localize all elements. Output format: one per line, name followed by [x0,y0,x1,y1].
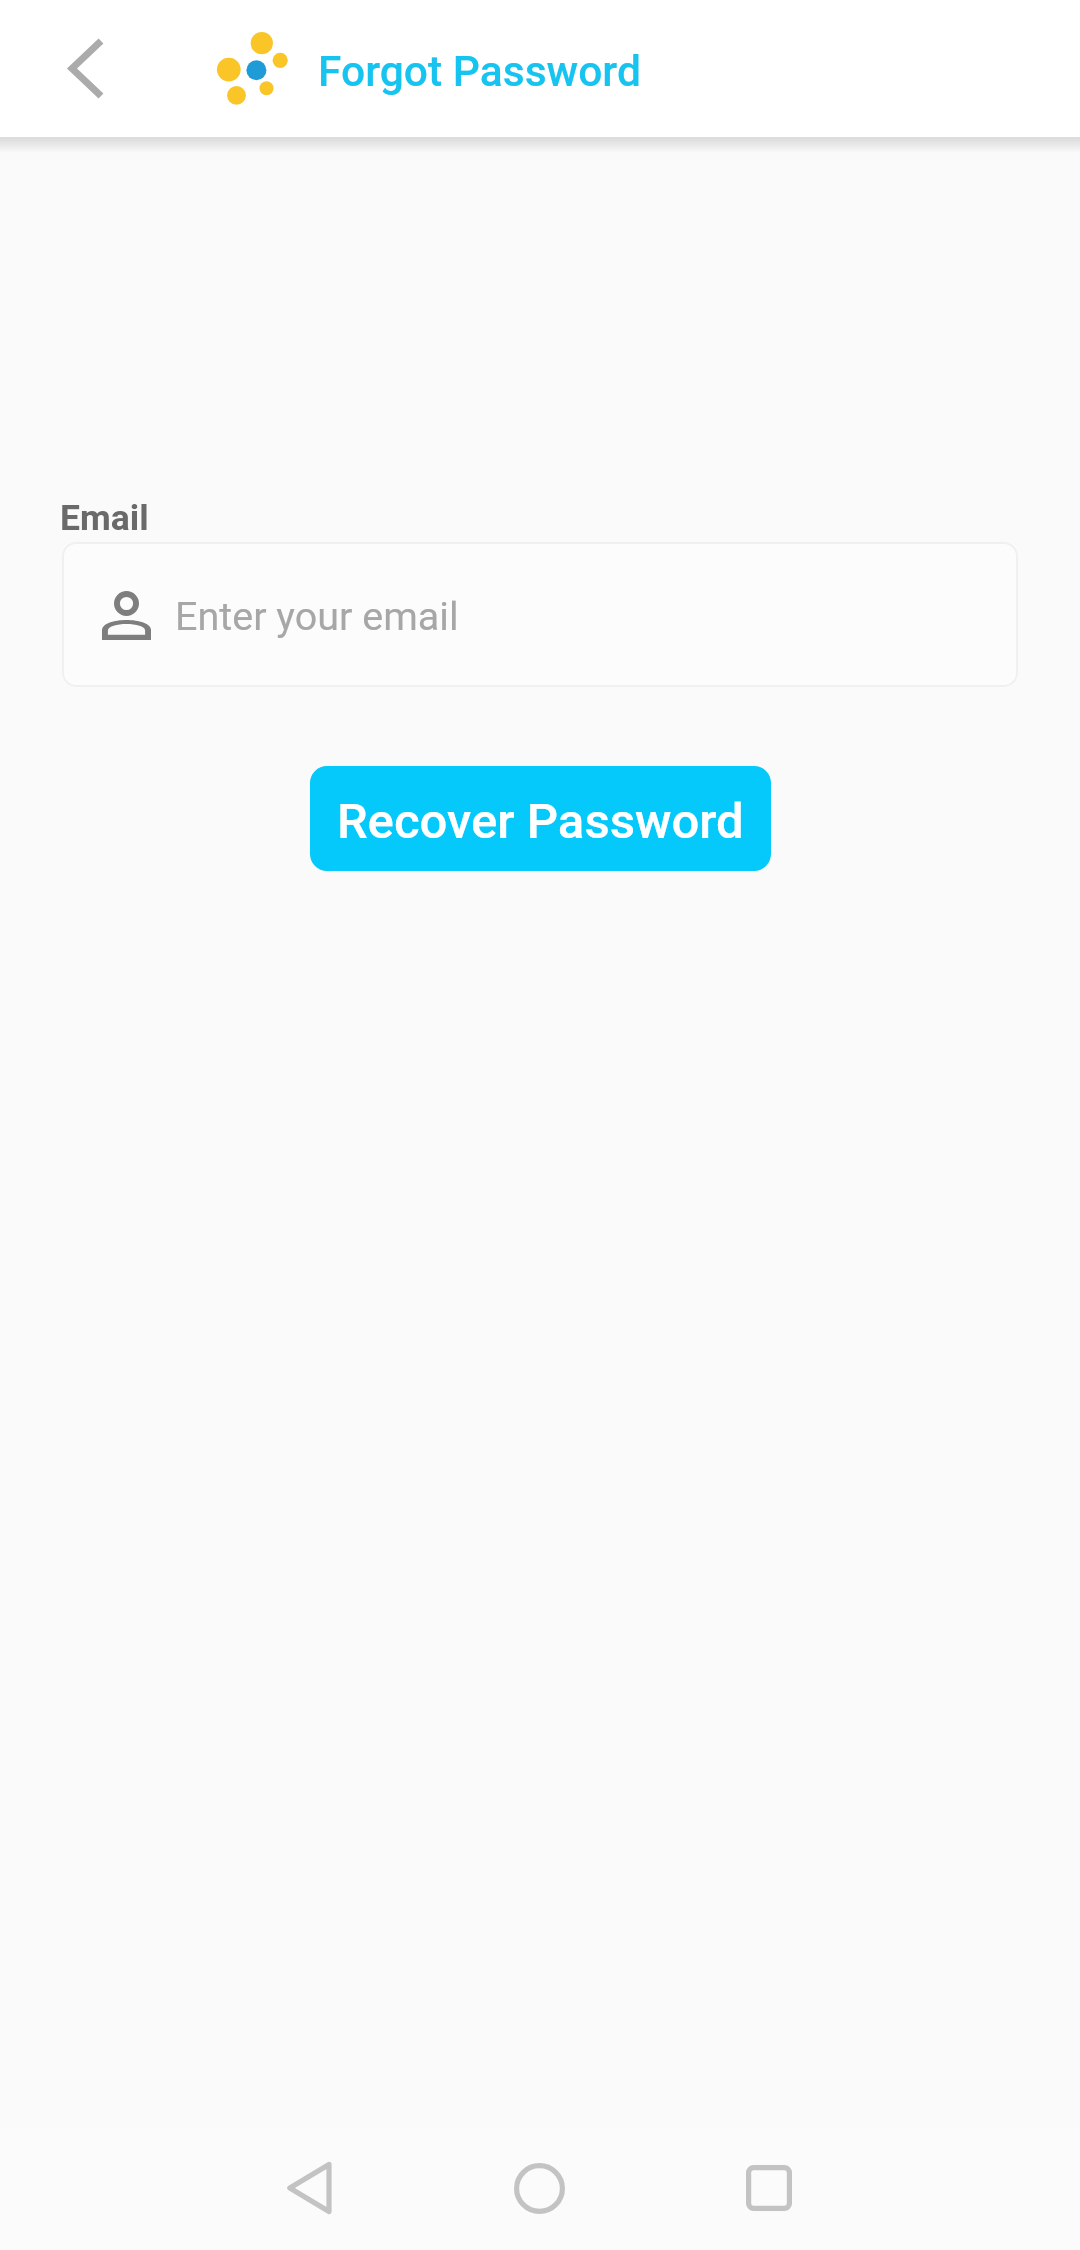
staticText: Forgot Password [318,46,641,96]
button[interactable]: Back [231,2128,386,2248]
button[interactable]: Home [462,2128,617,2248]
staticText: Email [60,497,149,539]
staticText: Recover Password [337,792,744,850]
button[interactable]: Navigate back [0,0,172,137]
button[interactable]: Recent apps [691,2128,846,2248]
staticText: Enter your email [175,593,459,640]
button[interactable]: Recover Password [310,766,771,871]
button[interactable]: Enter your email [62,542,1018,687]
